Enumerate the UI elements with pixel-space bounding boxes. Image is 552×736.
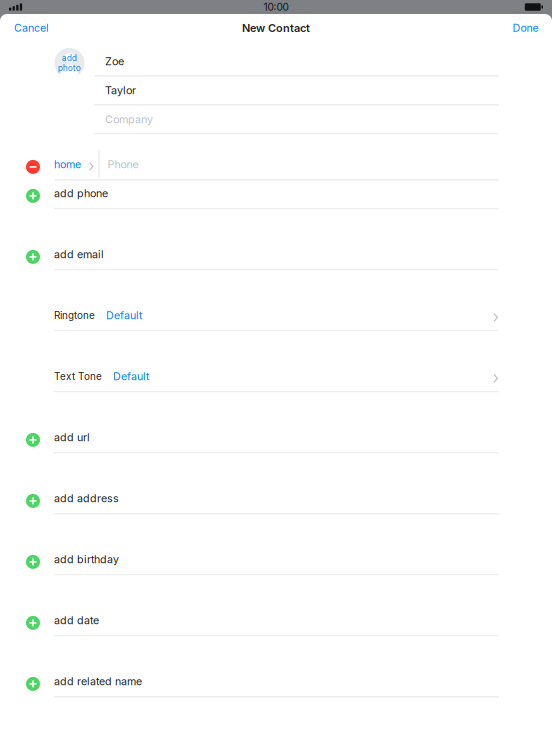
staticText: add related name [54, 675, 142, 688]
button[interactable]: add birthday [0, 546, 552, 575]
staticText: Done [512, 21, 538, 34]
button[interactable]: add address [0, 485, 552, 514]
staticText: Taylor [105, 84, 136, 97]
staticText: add phone [54, 187, 108, 200]
staticText: add url [54, 431, 90, 444]
staticText: Phone [107, 158, 138, 171]
button[interactable]: Company [94, 105, 499, 134]
staticText: Cancel [14, 21, 49, 34]
staticText: Ringtone [54, 309, 95, 321]
button[interactable]: add email [0, 241, 552, 270]
button[interactable]: add related name [0, 668, 552, 697]
staticText: Default [113, 370, 149, 383]
staticText: add date [54, 614, 99, 627]
staticText: add [62, 53, 77, 63]
staticText: add email [54, 248, 104, 261]
staticText: 10:00 [263, 1, 288, 13]
button[interactable]: Taylor [94, 76, 499, 105]
button[interactable]: home [0, 151, 552, 180]
button[interactable]: Ringtone [0, 302, 552, 331]
staticText: add birthday [54, 553, 119, 566]
button[interactable]: add phone [0, 180, 552, 209]
staticText: Zoe [105, 55, 124, 68]
button[interactable]: add url [0, 424, 552, 453]
staticText: New Contact [242, 21, 310, 35]
button[interactable]: add date [0, 607, 552, 636]
button[interactable]: add photo [54, 48, 84, 78]
staticText: photo [58, 63, 81, 73]
button[interactable]: Text Tone [0, 363, 552, 392]
button[interactable]: Cancel [0, 14, 61, 40]
staticText: Default [106, 309, 142, 322]
staticText: add address [54, 492, 119, 505]
button[interactable]: Done [500, 14, 552, 40]
staticText: Text Tone [54, 370, 102, 382]
button[interactable]: Zoe [94, 47, 499, 76]
staticText: Company [105, 113, 153, 126]
staticText: home [54, 158, 81, 171]
